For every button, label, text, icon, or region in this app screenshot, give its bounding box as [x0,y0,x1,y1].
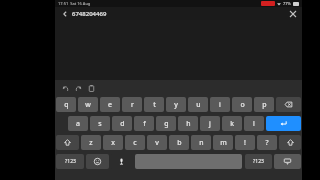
staticText: d [120,119,125,129]
button[interactable]: a [68,116,88,131]
staticText: w [85,100,91,110]
staticText: z [89,138,93,148]
button[interactable]: Hide keyboard [274,154,301,169]
staticText: m [220,138,227,148]
staticText: q [64,100,69,110]
staticText: k [230,119,234,129]
button[interactable]: t [144,97,164,112]
button[interactable]: Emoji [86,154,109,169]
staticText: n [199,138,204,148]
button[interactable]: l [244,116,264,131]
staticText: o [240,100,245,110]
staticText: r [131,100,134,110]
staticText: i [219,100,221,110]
button[interactable]: x [103,135,123,150]
staticText: e [108,100,112,110]
button[interactable]: Enter [266,116,301,131]
staticText: u [196,100,201,110]
button[interactable]: i [210,97,230,112]
staticText: p [262,100,267,110]
button[interactable]: u [188,97,208,112]
button[interactable]: b [169,135,189,150]
staticText: 17:51 Sat 16 Aug [58,1,91,6]
button[interactable]: Paste [86,83,96,93]
staticText: ! [244,138,246,148]
button[interactable]: f [134,116,154,131]
button[interactable]: c [125,135,145,150]
button[interactable]: Redo [73,83,83,93]
button[interactable]: w [78,97,98,112]
staticText: f [143,119,146,129]
staticText: x [111,138,115,148]
button[interactable]: h [178,116,198,131]
staticText: j [209,119,211,129]
staticText: ?123 [65,158,76,165]
staticText: g [164,119,169,129]
button[interactable]: d [112,116,132,131]
button[interactable]: n [191,135,211,150]
button[interactable]: m [213,135,233,150]
button[interactable]: ? [257,135,277,150]
staticText: y [174,100,178,110]
button[interactable]: p [254,97,274,112]
staticText: t [153,100,156,110]
staticText: l [253,119,255,129]
button[interactable]: k [222,116,242,131]
staticText: b [177,138,182,148]
button[interactable]: z [81,135,101,150]
staticText: a [76,119,80,129]
button[interactable]: j [200,116,220,131]
button[interactable]: s [90,116,110,131]
staticText: ?123 [253,158,264,165]
button[interactable]: Shift [56,135,79,150]
button[interactable]: ! [235,135,255,150]
button[interactable]: q [56,97,76,112]
button[interactable]: Close [287,8,298,19]
button[interactable]: r [122,97,142,112]
button[interactable]: Back [59,8,70,19]
button[interactable]: y [166,97,186,112]
button[interactable]: v [147,135,167,150]
staticText: 6748204469 [72,10,107,18]
button[interactable]: Shift [279,135,301,150]
button[interactable]: ?123 [245,154,272,169]
staticText: h [186,119,191,129]
button[interactable]: Undo [60,83,70,93]
staticText: 77% [283,1,291,6]
staticText: s [98,119,102,129]
button[interactable]: Backspace [276,97,301,112]
button[interactable]: g [156,116,176,131]
button[interactable]: e [100,97,120,112]
staticText: v [155,138,159,148]
button[interactable]: Voice input [111,154,132,169]
staticText: c [133,138,137,148]
button[interactable]: o [232,97,252,112]
staticText: ? [265,138,269,148]
button[interactable]: ?123 [56,154,84,169]
